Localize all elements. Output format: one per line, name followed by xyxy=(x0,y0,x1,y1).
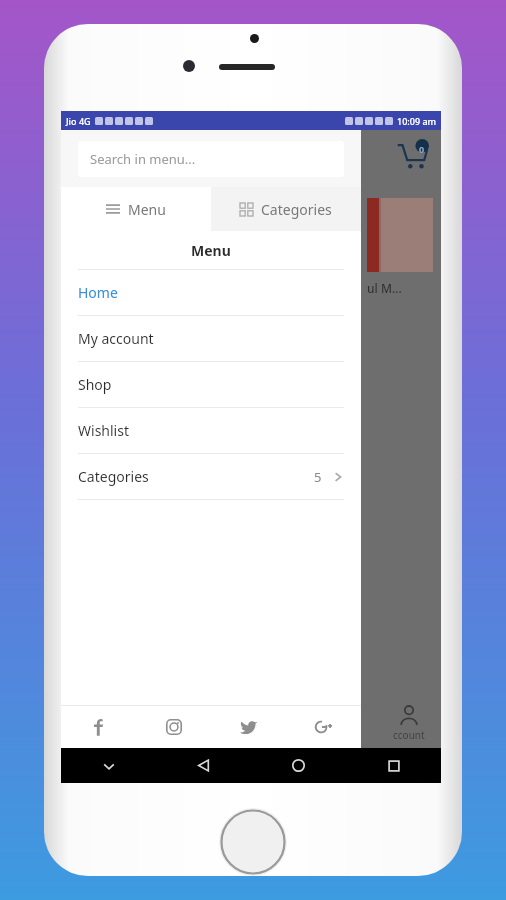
button[interactable]: My account xyxy=(61,316,361,361)
staticText: Search in menu... xyxy=(90,150,196,168)
button[interactable]: Wishlist xyxy=(61,408,361,453)
staticText: ul M... xyxy=(367,280,402,296)
staticText: Wishlist xyxy=(78,421,129,440)
button[interactable]: Categories xyxy=(211,187,361,231)
button[interactable]: Instagram xyxy=(136,706,211,748)
staticText: Categories xyxy=(261,200,332,219)
button[interactable]: Home xyxy=(251,748,346,783)
button[interactable]: Search in menu... xyxy=(78,141,344,177)
staticText: Menu xyxy=(191,241,231,260)
button[interactable]: Google Plus xyxy=(286,706,361,748)
staticText: Shop xyxy=(78,375,112,394)
staticText: Jio 4G xyxy=(66,115,91,127)
button[interactable]: Back xyxy=(156,748,251,783)
button[interactable]: Facebook xyxy=(61,706,136,748)
staticText: Home xyxy=(78,283,118,302)
button[interactable]: Shop xyxy=(61,362,361,407)
staticText: 5 xyxy=(314,468,322,486)
button[interactable]: Hide keyboard xyxy=(61,748,156,783)
button[interactable]: Twitter xyxy=(211,706,286,748)
staticText: ccount xyxy=(393,728,425,742)
button[interactable]: Recents xyxy=(346,748,441,783)
staticText: Categories xyxy=(78,467,149,486)
staticText: My account xyxy=(78,329,154,348)
button[interactable]: Categories xyxy=(61,454,361,499)
button[interactable]: ccount xyxy=(377,704,441,742)
staticText: 0 xyxy=(419,143,425,155)
button[interactable]: Cart xyxy=(391,135,433,177)
staticText: 10:09 am xyxy=(397,115,437,127)
staticText: Menu xyxy=(128,200,166,219)
button[interactable]: Home xyxy=(61,270,361,315)
button[interactable]: Menu xyxy=(61,187,211,231)
